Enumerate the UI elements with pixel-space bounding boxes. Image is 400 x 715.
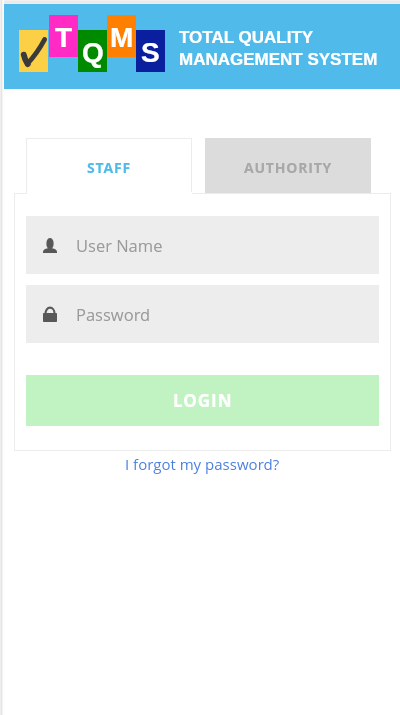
- staticText: M: [110, 22, 134, 53]
- button[interactable]: I forgot my password?: [125, 454, 280, 474]
- button[interactable]: AUTHORITY: [205, 138, 371, 193]
- staticText: T: [55, 22, 73, 53]
- staticText: Q: [82, 37, 104, 68]
- staticText: AUTHORITY: [244, 158, 333, 177]
- staticText: TOTAL QUALITY MANAGEMENT SYSTEM: [179, 28, 378, 69]
- staticText: S: [141, 37, 160, 68]
- staticText: Password: [76, 303, 151, 325]
- staticText: User Name: [76, 234, 163, 256]
- staticText: LOGIN: [173, 389, 233, 412]
- button[interactable]: STAFF: [26, 138, 192, 193]
- button[interactable]: LOGIN: [26, 375, 379, 426]
- staticText: STAFF: [87, 158, 131, 177]
